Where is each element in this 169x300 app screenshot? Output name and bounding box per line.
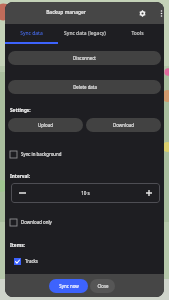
button[interactable]: Delete data: [8, 80, 161, 94]
button[interactable]: Disconnect: [8, 51, 161, 65]
staticText: Settings:: [10, 107, 31, 113]
button[interactable]: Upload: [8, 118, 83, 132]
button[interactable]: Tools: [111, 24, 164, 42]
staticText: Disconnect: [73, 55, 96, 61]
button[interactable]: Sync data: [5, 24, 58, 42]
button[interactable]: Increase interval: [138, 183, 160, 203]
staticText: Tracks: [25, 258, 38, 264]
staticText: Items:: [10, 242, 25, 248]
staticText: 10 s: [81, 190, 90, 196]
button[interactable]: Sync in background: [8, 144, 161, 164]
button[interactable]: Decrease interval: [11, 183, 33, 203]
staticText: Upload: [38, 122, 53, 128]
staticText: Sync data: [20, 30, 43, 37]
staticText: Close: [97, 283, 109, 289]
staticText: Download: [113, 122, 134, 128]
button[interactable]: Close: [90, 279, 115, 293]
button[interactable]: More options: [152, 4, 164, 22]
button[interactable]: Sync now: [49, 279, 88, 293]
staticText: Sync in background: [21, 151, 62, 157]
staticText: Download only: [21, 219, 52, 225]
button[interactable]: Sync data (legacy): [58, 24, 111, 42]
staticText: Delete data: [73, 84, 97, 90]
staticText: Sync now: [59, 283, 79, 289]
staticText: Backup manager: [46, 9, 86, 16]
button[interactable]: Tracks: [8, 251, 161, 271]
staticText: Sync data (legacy): [64, 30, 106, 37]
staticText: Tools: [131, 30, 144, 37]
button[interactable]: Download only: [8, 212, 161, 232]
staticText: Interval:: [10, 173, 30, 179]
button[interactable]: Settings: [133, 4, 151, 22]
button[interactable]: Download: [86, 118, 161, 132]
